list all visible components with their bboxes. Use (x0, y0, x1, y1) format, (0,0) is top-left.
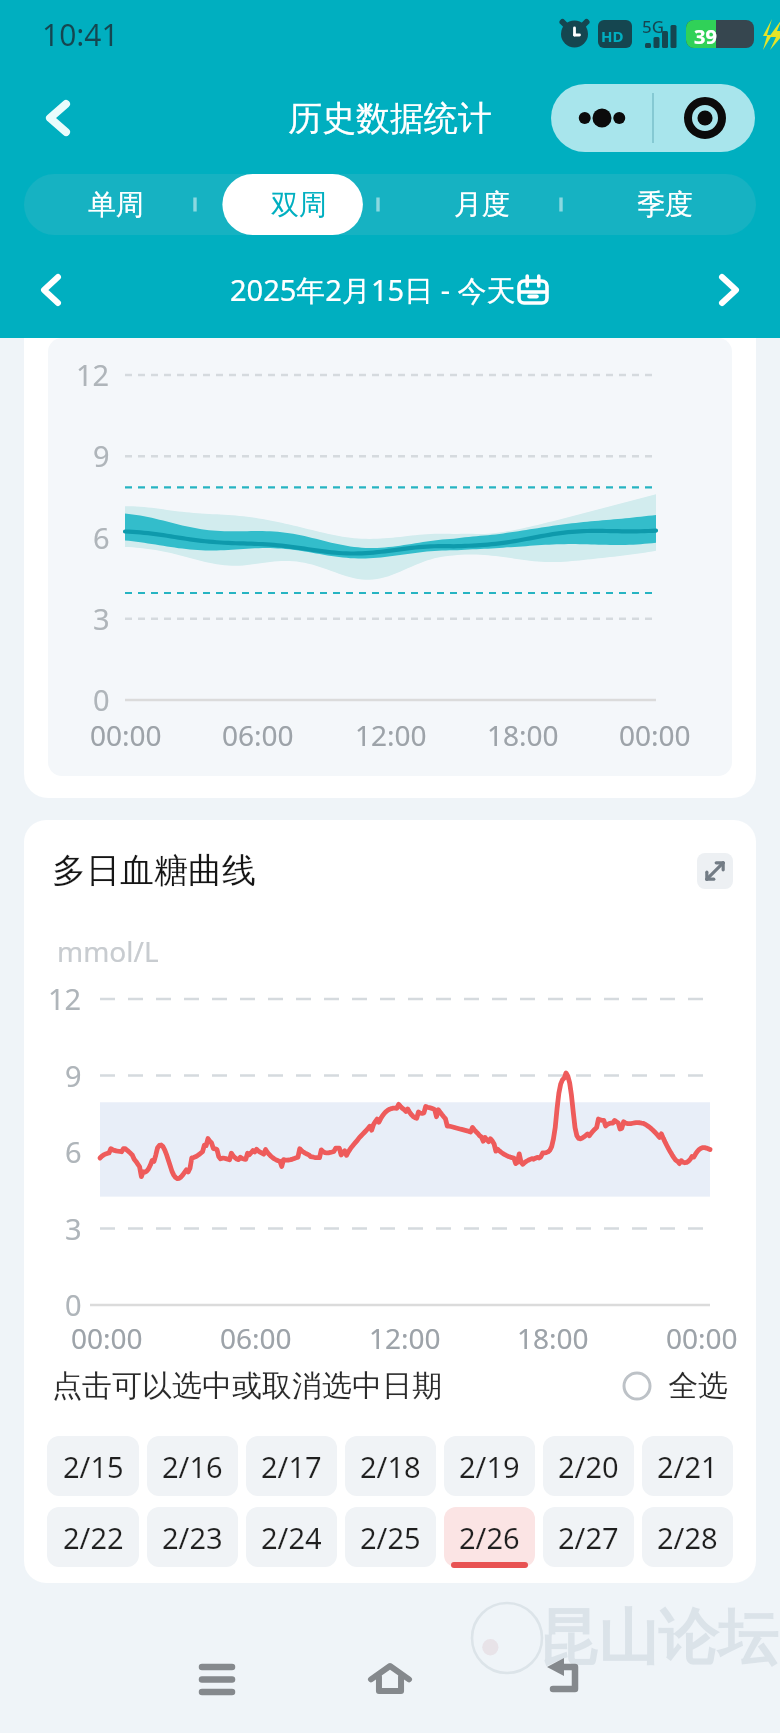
button[interactable]: 单周 (24, 174, 207, 235)
staticText: 0 (65, 1285, 82, 1324)
staticText: 6 (93, 518, 110, 557)
staticText: 2/20 (558, 1447, 619, 1486)
staticText: 2/27 (558, 1518, 619, 1557)
button[interactable]: 2/16 (147, 1436, 238, 1496)
button[interactable]: 双周 (207, 174, 390, 235)
staticText: mmol/L (57, 932, 159, 970)
staticText: 2/16 (162, 1447, 223, 1486)
button[interactable]: 2/25 (345, 1507, 436, 1567)
staticText: 2/19 (459, 1447, 520, 1486)
staticText: 2/22 (63, 1518, 124, 1557)
staticText: 18:00 (487, 716, 559, 754)
staticText: 12:00 (355, 716, 427, 754)
staticText: 0 (93, 680, 110, 719)
button[interactable]: 2/21 (642, 1436, 733, 1496)
button[interactable]: 2/20 (543, 1436, 634, 1496)
staticText: 10:41 (42, 14, 119, 55)
button[interactable]: Back (32, 92, 84, 144)
staticText: 双周 (271, 187, 327, 222)
button[interactable]: 2/26 (444, 1507, 535, 1567)
button[interactable]: 季度 (573, 174, 756, 235)
button[interactable]: 全选 (622, 1367, 728, 1405)
staticText: 00:00 (619, 716, 691, 754)
button[interactable]: Home (346, 1634, 434, 1722)
button[interactable]: Previous period (24, 263, 78, 317)
staticText: 季度 (637, 187, 693, 222)
staticText: 06:00 (222, 716, 294, 754)
button[interactable]: 2/17 (246, 1436, 337, 1496)
staticText: 12 (76, 355, 110, 394)
staticText: 06:00 (220, 1319, 292, 1357)
staticText: 2/28 (657, 1518, 718, 1557)
staticText: 12 (48, 979, 82, 1018)
staticText: 单周 (88, 187, 144, 222)
staticText: 2/17 (261, 1447, 322, 1486)
button[interactable]: 2/15 (47, 1436, 139, 1496)
button[interactable]: 2/18 (345, 1436, 436, 1496)
staticText: 12:00 (369, 1319, 441, 1357)
button[interactable]: 2/27 (543, 1507, 634, 1567)
staticText: 39 (694, 23, 717, 50)
button[interactable]: 2/24 (246, 1507, 337, 1567)
staticText: 2/18 (360, 1447, 421, 1486)
button[interactable]: 2/23 (147, 1507, 238, 1567)
staticText: 2/24 (261, 1518, 322, 1557)
staticText: 2/25 (360, 1518, 421, 1557)
staticText: 6 (65, 1132, 82, 1171)
button[interactable]: Recent apps (173, 1634, 261, 1722)
button[interactable]: Next period (702, 263, 756, 317)
staticText: 2/15 (63, 1447, 124, 1486)
staticText: 5G (642, 15, 665, 38)
button[interactable]: More options (551, 84, 652, 152)
button[interactable]: Expand chart (697, 853, 733, 889)
staticText: 历史数据统计 (288, 97, 492, 140)
staticText: 2025年2月15日 - 今天 (230, 270, 516, 310)
staticText: 00:00 (666, 1319, 738, 1357)
staticText: 00:00 (71, 1319, 143, 1357)
staticText: 月度 (454, 187, 510, 222)
button[interactable]: Back (519, 1634, 607, 1722)
staticText: 点击可以选中或取消选中日期 (52, 1367, 442, 1405)
button[interactable]: 2/28 (642, 1507, 733, 1567)
button[interactable]: 2/19 (444, 1436, 535, 1496)
staticText: 2/26 (459, 1518, 520, 1557)
staticText: 18:00 (517, 1319, 589, 1357)
staticText: 昆山论坛 (538, 1600, 778, 1676)
button[interactable]: 2/22 (47, 1507, 139, 1567)
staticText: 2/23 (162, 1518, 223, 1557)
staticText: 3 (93, 599, 110, 638)
staticText: 2/21 (657, 1447, 718, 1486)
staticText: 全选 (668, 1367, 728, 1405)
staticText: 3 (65, 1209, 82, 1248)
staticText: 多日血糖曲线 (52, 849, 256, 892)
staticText: 00:00 (90, 716, 162, 754)
staticText: HD (601, 26, 624, 46)
button[interactable]: 月度 (390, 174, 573, 235)
staticText: 9 (65, 1056, 82, 1095)
staticText: 9 (93, 436, 110, 475)
button[interactable]: Close mini program (654, 84, 755, 152)
